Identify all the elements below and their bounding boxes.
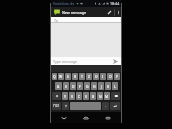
button[interactable]: L [112,82,118,90]
button[interactable]: Send [111,57,119,65]
staticText: W [59,74,63,79]
button[interactable]: E [65,73,71,80]
button[interactable]: J [98,82,104,90]
staticText: G [86,84,89,89]
staticText: Y [64,94,66,99]
staticText: D [72,84,75,89]
staticText: . [105,104,106,108]
staticText: New message [62,10,87,15]
staticText: T [81,74,83,79]
staticText: U [95,74,98,79]
staticText: L [114,84,116,89]
staticText: A [57,84,60,89]
button[interactable]: P [114,73,120,80]
staticText: E [67,74,69,79]
staticText: N [99,94,102,99]
button[interactable]: Recent apps [99,112,117,123]
staticText: Z [88,74,90,79]
button[interactable]: Z [86,73,92,80]
staticText: C [78,94,81,99]
staticText: B [92,94,95,99]
staticText: K [107,84,110,89]
button[interactable]: C [76,92,82,100]
staticText: H [93,84,96,89]
button[interactable]: X [69,92,75,100]
button[interactable]: Shift [52,92,61,100]
button[interactable]: K [105,82,111,90]
button[interactable]: N [97,92,103,100]
button[interactable]: F [77,82,83,90]
staticText: Vodafone.de [53,1,75,6]
button[interactable]: H [91,82,97,90]
staticText: ?123 [53,104,60,108]
staticText: J [101,84,102,89]
button[interactable]: S [63,82,69,90]
button[interactable]: I [100,73,106,80]
staticText: M [105,94,109,99]
staticText: To [54,18,58,23]
button[interactable]: Attach [105,7,114,17]
button[interactable]: More options [115,7,121,17]
staticText: O [109,74,112,79]
button[interactable]: ?123 [52,102,61,110]
staticText: R [74,74,77,79]
button[interactable]: W [58,73,64,80]
staticText: X [71,94,73,99]
button[interactable]: M [104,92,110,100]
button[interactable]: U [93,73,99,80]
button[interactable]: Voice input [62,102,69,110]
staticText: Q [53,74,56,79]
staticText: P [116,74,119,79]
button[interactable]: Q [52,73,57,80]
button[interactable]: Backspace [111,92,120,100]
button[interactable]: Enter [110,102,120,110]
staticText: S [65,84,67,89]
button[interactable]: Home [77,112,95,123]
staticText: I [102,74,104,79]
staticText: V [85,94,88,99]
button[interactable]: D [70,82,76,90]
button[interactable]: T [79,73,85,80]
button[interactable]: . [102,102,109,110]
button[interactable]: O [107,73,113,80]
button[interactable]: A [55,82,62,90]
staticText: Type message [53,59,78,64]
button[interactable]: V [83,92,89,100]
button[interactable]: B [90,92,96,100]
button[interactable]: Back [55,112,73,123]
button[interactable]: G [84,82,90,90]
staticText: 18:44 [110,1,120,6]
staticText: F [79,84,81,89]
button[interactable]: R [72,73,78,80]
button[interactable]: Y [62,92,68,100]
